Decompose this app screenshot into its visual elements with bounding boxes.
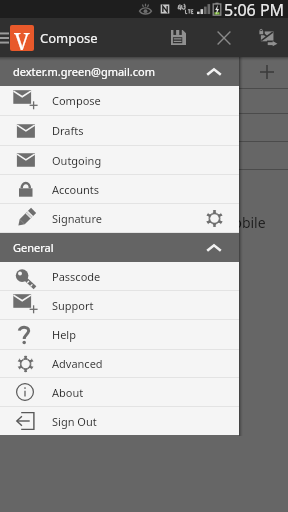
button[interactable]: Sign Out (0, 407, 239, 435)
staticText: Signature (52, 211, 102, 226)
button[interactable]: Outgoing (0, 146, 239, 174)
button[interactable]: Send secure (246, 18, 288, 57)
button[interactable]: Signature (0, 204, 239, 232)
staticText: Support (52, 298, 94, 313)
button[interactable]: V (0, 18, 100, 57)
button[interactable]: dexter.m.green@gmail.com (0, 57, 239, 86)
button[interactable]: Signature settings (196, 204, 233, 232)
staticText: dexter.m.green@gmail.com (13, 64, 155, 79)
staticText: Help (52, 327, 76, 342)
button[interactable]: Save draft (156, 18, 201, 57)
button[interactable]: Accounts (0, 175, 239, 203)
button[interactable]: Add recipient (252, 58, 282, 86)
button[interactable]: General (0, 233, 239, 262)
staticText: About (52, 385, 84, 400)
button[interactable]: Collapse section (196, 233, 232, 262)
button[interactable]: Discard (201, 18, 246, 57)
staticText: Sent from my mobile (128, 213, 266, 232)
staticText: Compose (40, 29, 98, 47)
staticText: Compose (52, 93, 101, 108)
staticText: Drafts (52, 123, 84, 138)
button[interactable]: About (0, 378, 239, 406)
staticText: Advanced (52, 356, 103, 371)
button[interactable]: Drafts (0, 116, 239, 145)
button[interactable]: Support (0, 291, 239, 319)
button[interactable]: Advanced (0, 350, 239, 377)
button[interactable]: Compose (0, 86, 239, 115)
staticText: General (13, 240, 54, 255)
button[interactable]: Passcode (0, 262, 239, 290)
staticText: Sign Out (52, 414, 97, 429)
staticText: Passcode (52, 269, 101, 284)
button[interactable]: Collapse section (196, 57, 232, 86)
staticText: V (14, 25, 30, 51)
staticText: Outgoing (52, 153, 102, 168)
staticText: Accounts (52, 182, 100, 197)
staticText: 5:06 PM (224, 0, 285, 17)
button[interactable]: Help (0, 320, 239, 349)
